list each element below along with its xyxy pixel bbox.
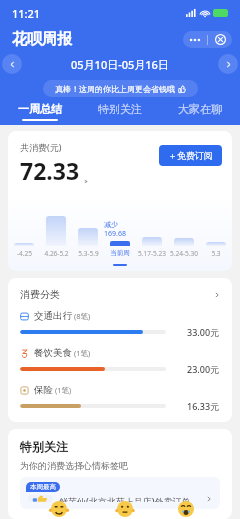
staticText: -4.25 [17,249,32,258]
staticText: 真棒！这周的你比上周更会省钱哦 [55,84,175,94]
staticText: 特别关注 [20,439,68,454]
button[interactable]: 大家在聊 [160,102,240,125]
staticText: 4.26-5.2 [44,249,69,258]
staticText: 鲜芋仙(北京北苑上品店)外卖订单 [59,495,191,502]
staticText: (1笔) [55,385,72,395]
staticText: 16.33元 [187,400,220,412]
button[interactable]: Previous week [2,54,22,74]
button[interactable]: More options [183,31,207,48]
staticText: 保险 [34,384,53,396]
staticText: 33.00元 [187,326,220,338]
staticText: 05月10日-05月16日 [71,57,169,72]
staticText: 减少169.68 [104,220,136,239]
button[interactable]: 保险 [20,384,220,412]
staticText: 特别关注 [98,102,142,116]
button[interactable]: 消费分类 [20,288,220,301]
staticText: (1笔) [74,348,91,358]
staticText: 23.00元 [187,363,220,375]
staticText: 11:21 [12,6,41,21]
staticText: 为你的消费选择心情标签吧 [20,460,128,471]
button[interactable]: 真棒！这周的你比上周更会省钱哦 [43,80,198,97]
button[interactable]: Next week [218,54,238,74]
button[interactable]: 特别关注 [80,102,160,125]
staticText: 餐饮美食 [34,347,72,359]
button[interactable]: 交通出行 [20,310,220,338]
staticText: 交通出行 [34,310,72,322]
button[interactable]: ＋免费订阅 [159,145,222,166]
button[interactable]: 餐饮美食 [20,347,220,375]
staticText: 5.3-5.9 [78,249,99,258]
button[interactable]: 本周最高 [20,477,220,509]
staticText: 本周最高 [30,483,56,491]
button[interactable]: 一周总结 [0,102,80,125]
staticText: 72.33 [20,155,80,186]
staticText: 共消费(元) [20,141,62,153]
staticText: 一周总结 [18,102,62,116]
staticText: 5.17-5.23 [138,249,166,258]
staticText: 5.3 [211,249,221,258]
staticText: ＋免费订阅 [168,150,213,161]
button[interactable]: Close [208,31,232,48]
staticText: 大家在聊 [178,102,222,116]
staticText: 花呗周报 [12,30,72,49]
staticText: 5.24-5.30 [170,249,198,258]
staticText: (8笔) [74,311,91,321]
staticText: 当前周 [110,249,130,257]
staticText: 消费分类 [20,288,60,301]
